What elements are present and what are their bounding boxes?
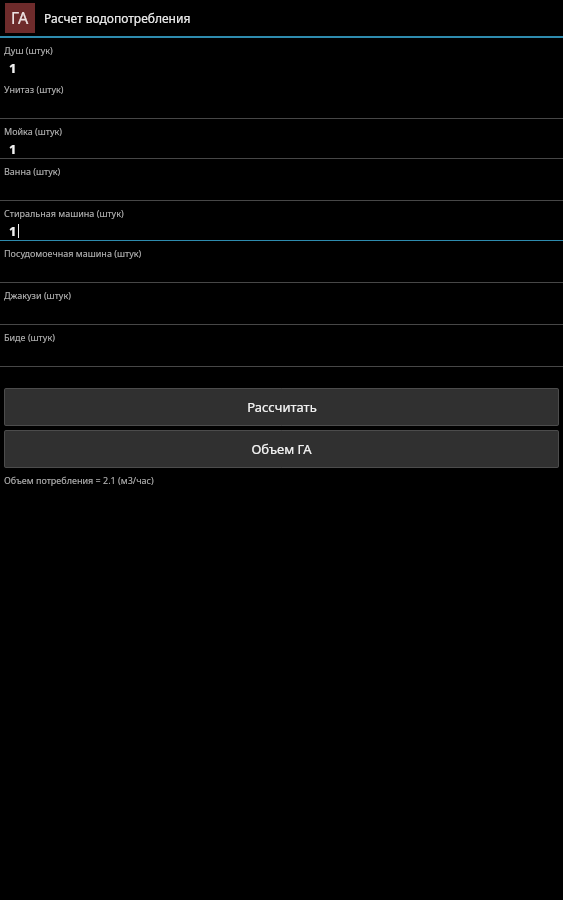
staticText: Душ (штук) [4, 44, 53, 56]
button[interactable]: Джакузи (штук) [0, 283, 563, 325]
staticText: Мойка (штук) [4, 125, 63, 137]
button[interactable]: Стиральная машина (штук) [0, 201, 563, 241]
staticText: Расчет водопотребления [44, 10, 191, 26]
staticText: Унитаз (штук) [4, 83, 64, 95]
button[interactable]: Рассчитать [4, 388, 559, 426]
staticText: 1 [9, 59, 17, 77]
staticText: Объем ГА [251, 440, 312, 458]
button[interactable]: Биде (штук) [0, 325, 563, 367]
button[interactable]: Посудомоечная машина (штук) [0, 241, 563, 283]
staticText: Джакузи (штук) [4, 289, 71, 301]
button[interactable]: Унитаз (штук) [0, 77, 563, 119]
staticText: Биде (штук) [4, 331, 55, 343]
other: App icon [5, 3, 35, 33]
staticText: ГА [11, 7, 29, 29]
staticText: 1 [9, 140, 17, 158]
staticText: Ванна (штук) [4, 165, 61, 177]
staticText: Рассчитать [247, 398, 317, 416]
staticText: Стиральная машина (штук) [4, 207, 124, 219]
button[interactable]: Мойка (штук) [0, 119, 563, 159]
button[interactable]: Ванна (штук) [0, 159, 563, 201]
button[interactable]: Объем ГА [4, 430, 559, 468]
button[interactable]: Душ (штук) [0, 38, 563, 77]
staticText: 1 [9, 222, 17, 240]
staticText: Посудомоечная машина (штук) [4, 247, 142, 259]
staticText: Объем потребления = 2.1 (м3/час) [4, 474, 154, 486]
